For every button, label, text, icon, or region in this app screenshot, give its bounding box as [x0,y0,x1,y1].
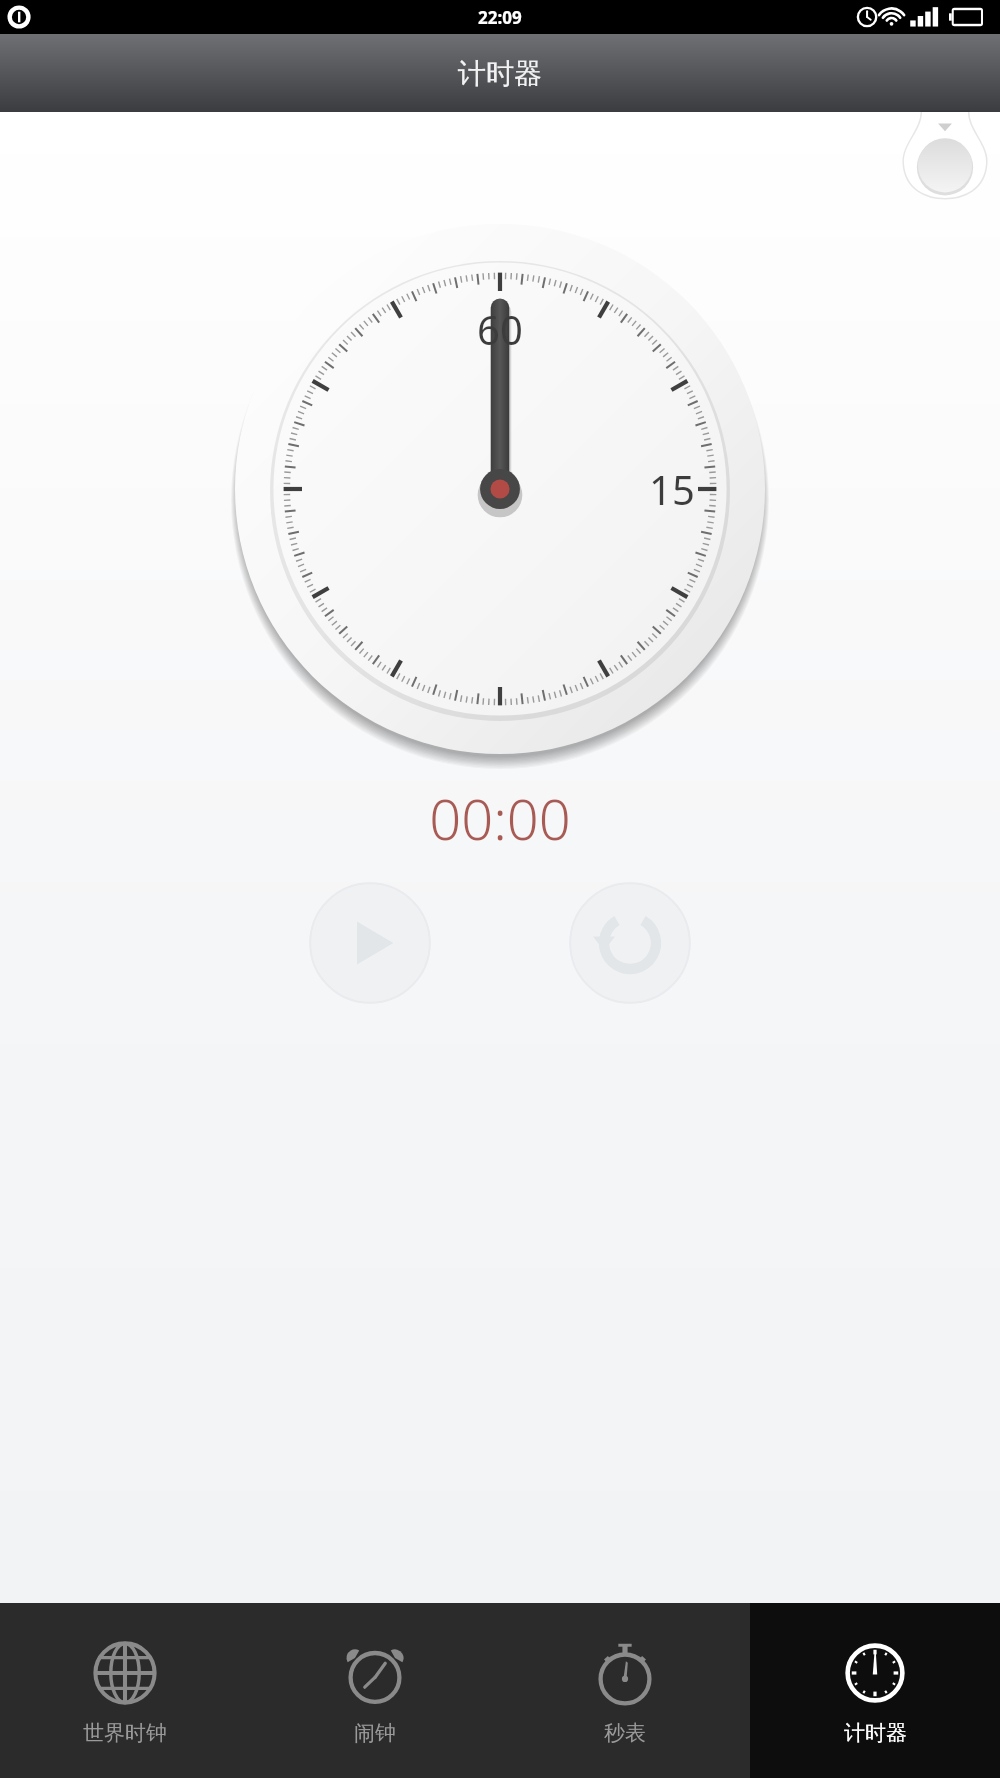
button[interactable]: Reset [565,878,695,1008]
staticText: 15 [649,462,695,516]
staticText: 22:09 [478,6,522,29]
button[interactable]: Start [305,878,435,1008]
button[interactable]: 世界时钟 [0,1603,250,1778]
button[interactable]: 计时器 [750,1603,1000,1778]
staticText: 闹钟 [354,1720,396,1746]
staticText: 计时器 [844,1720,907,1746]
button[interactable]: Timer dial [235,224,765,754]
button[interactable]: Expand timer options [904,112,986,198]
staticText: 计时器 [458,56,542,91]
button[interactable]: 秒表 [500,1603,750,1778]
staticText: 秒表 [604,1720,646,1746]
button[interactable]: 闹钟 [250,1603,500,1778]
staticText: 60 [477,302,523,356]
staticText: 00:00 [429,780,571,856]
staticText: 世界时钟 [83,1720,167,1746]
